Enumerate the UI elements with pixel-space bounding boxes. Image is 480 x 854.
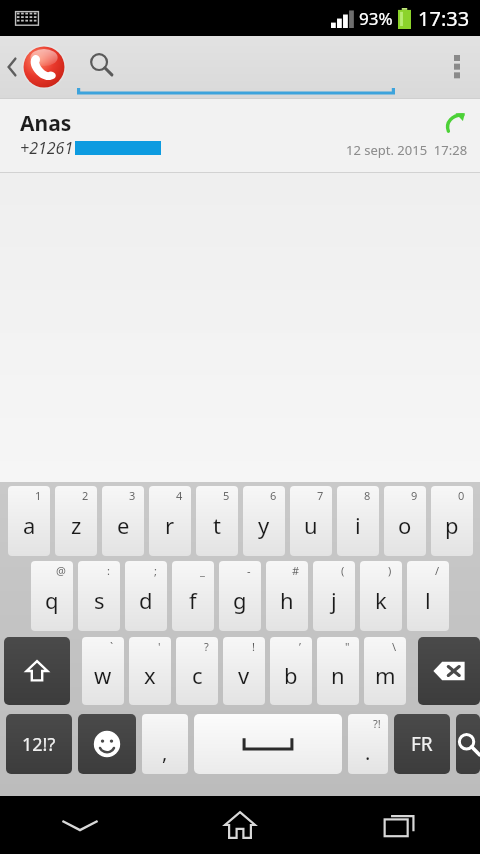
staticText: 9	[411, 488, 418, 503]
button[interactable]: Shift	[4, 637, 70, 705]
button[interactable]: Back	[0, 36, 74, 98]
button[interactable]: 4	[149, 486, 191, 556]
staticText: 93%	[359, 7, 393, 30]
staticText: 17:33	[418, 5, 470, 32]
staticText: 6	[270, 488, 277, 503]
staticText: _	[200, 563, 205, 578]
staticText: y	[258, 510, 270, 540]
button[interactable]: Space	[194, 714, 342, 774]
button[interactable]: )	[360, 561, 402, 631]
staticText: s	[94, 585, 105, 615]
staticText: t	[213, 510, 221, 540]
staticText: -	[247, 563, 251, 578]
button[interactable]: Emoji	[78, 714, 136, 774]
button[interactable]: :	[78, 561, 120, 631]
button[interactable]: ’	[270, 637, 312, 705]
staticText: 2	[82, 488, 89, 503]
staticText: @	[56, 563, 66, 578]
staticText: q	[45, 585, 59, 615]
button[interactable]: 5	[196, 486, 238, 556]
button[interactable]: ?!	[348, 714, 388, 774]
staticText: ?!	[373, 716, 381, 731]
staticText: j	[331, 585, 337, 615]
staticText: 8	[364, 488, 371, 503]
button[interactable]: ;	[125, 561, 167, 631]
button[interactable]: Anas	[0, 99, 480, 172]
button[interactable]: 0	[431, 486, 473, 556]
staticText: 4	[176, 488, 183, 503]
staticText: g	[233, 585, 247, 615]
staticText: n	[331, 660, 345, 690]
staticText: !	[252, 639, 255, 654]
button[interactable]: -	[219, 561, 261, 631]
staticText: /	[435, 563, 440, 578]
staticText: `	[110, 639, 114, 654]
button[interactable]: !	[223, 637, 265, 705]
staticText: f	[189, 585, 197, 615]
staticText: :	[107, 563, 110, 578]
staticText: +21261	[20, 137, 74, 159]
button[interactable]: /	[407, 561, 449, 631]
staticText: z	[71, 510, 82, 540]
staticText: o	[398, 510, 412, 540]
button[interactable]: 3	[102, 486, 144, 556]
staticText: ’	[299, 639, 301, 654]
staticText: b	[284, 660, 298, 690]
staticText: )	[388, 563, 392, 578]
staticText: FR	[411, 731, 433, 757]
staticText: e	[117, 510, 130, 540]
staticText: 0	[458, 488, 465, 503]
button[interactable]: ?	[176, 637, 218, 705]
button[interactable]: "	[317, 637, 359, 705]
staticText: ,	[162, 739, 168, 766]
button[interactable]: Symbols	[6, 714, 72, 774]
button[interactable]: 7	[290, 486, 332, 556]
button[interactable]	[77, 36, 395, 98]
staticText: (	[341, 563, 345, 578]
staticText: x	[144, 660, 156, 690]
button[interactable]: #	[266, 561, 308, 631]
button[interactable]: 1	[8, 486, 50, 556]
button[interactable]: @	[31, 561, 73, 631]
staticText: v	[238, 660, 250, 690]
staticText: "	[345, 639, 350, 654]
staticText: p	[445, 510, 459, 540]
staticText: 7	[317, 488, 324, 503]
staticText: #	[292, 563, 300, 578]
staticText: 1	[35, 488, 42, 503]
button[interactable]: Search	[456, 714, 480, 774]
staticText: i	[355, 510, 361, 540]
button[interactable]: 8	[337, 486, 379, 556]
button[interactable]: (	[313, 561, 355, 631]
button[interactable]: More options	[434, 36, 480, 98]
button[interactable]: 9	[384, 486, 426, 556]
button[interactable]: '	[129, 637, 171, 705]
staticText: \	[392, 639, 397, 654]
button[interactable]: \	[364, 637, 406, 705]
staticText: ;	[154, 563, 157, 578]
staticText: 12!?	[22, 732, 56, 757]
staticText: l	[425, 585, 431, 615]
button[interactable]: _	[172, 561, 214, 631]
button[interactable]: 2	[55, 486, 97, 556]
staticText: k	[375, 585, 387, 615]
button[interactable]: Home	[160, 796, 320, 854]
button[interactable]: 6	[243, 486, 285, 556]
staticText: '	[158, 639, 161, 654]
staticText: r	[165, 510, 175, 540]
staticText: 3	[129, 488, 136, 503]
button[interactable]: ,	[142, 714, 188, 774]
staticText: Anas	[20, 109, 72, 138]
button[interactable]: `	[82, 637, 124, 705]
button[interactable]: Language	[394, 714, 450, 774]
staticText: a	[23, 510, 36, 540]
staticText: m	[375, 660, 396, 690]
staticText: d	[139, 585, 153, 615]
staticText: 12 sept. 2015 17:28	[346, 141, 468, 159]
staticText: w	[94, 660, 112, 690]
staticText: 5	[223, 488, 230, 503]
button[interactable]: Recent apps	[320, 796, 480, 854]
button[interactable]: Hide keyboard	[0, 796, 160, 854]
staticText: c	[192, 660, 203, 690]
button[interactable]: Backspace	[418, 637, 480, 705]
